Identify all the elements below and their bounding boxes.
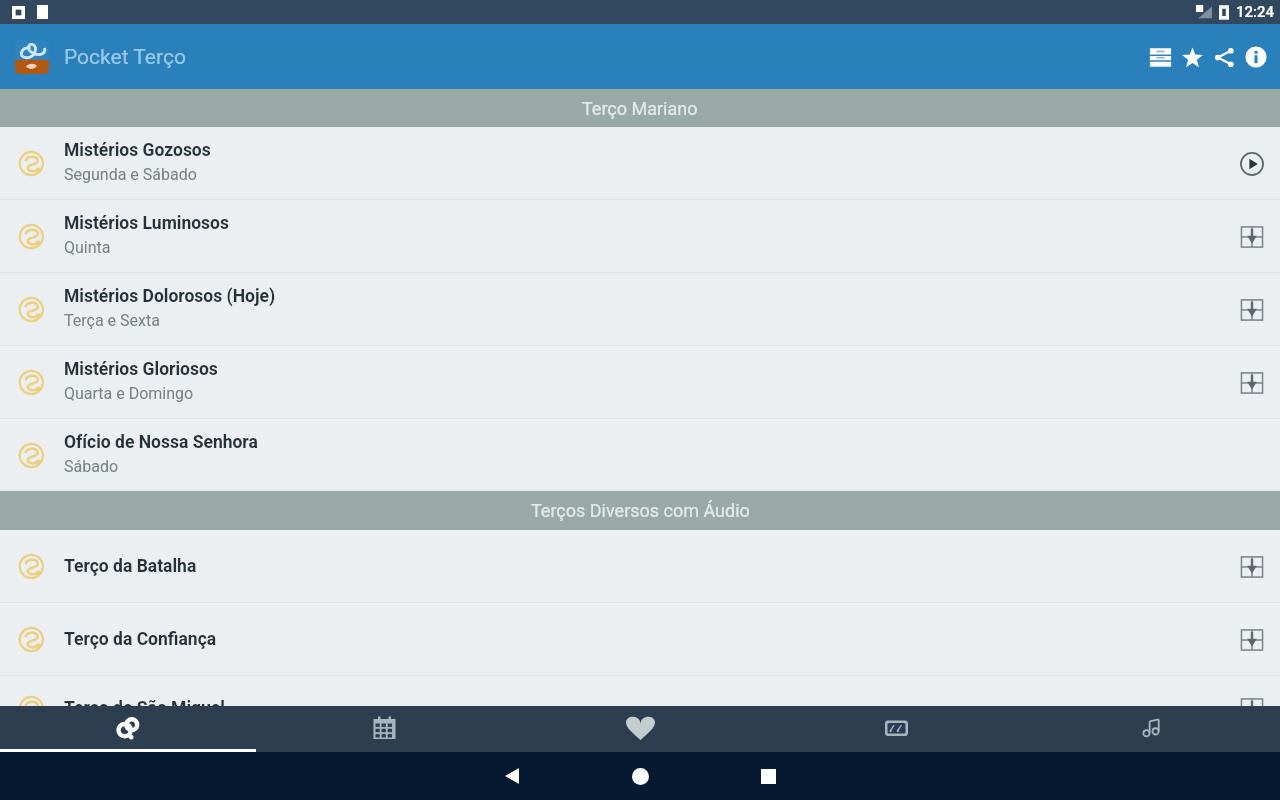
staticText: Terço Mariano — [582, 98, 698, 119]
button[interactable]: Terço de São Miguel — [0, 676, 1280, 706]
staticText: Sábado — [64, 457, 119, 476]
button[interactable]: Info — [1240, 33, 1272, 81]
staticText: Pocket Terço — [64, 45, 186, 70]
button[interactable]: Terço da Confiança — [0, 603, 1280, 676]
staticText: Quarta e Domingo — [64, 384, 194, 403]
button[interactable]: Terço da Batalha — [0, 530, 1280, 603]
button[interactable]: Favorites — [1176, 33, 1208, 81]
staticText: Ofício de Nossa Senhora — [64, 432, 258, 453]
button[interactable]: Recents — [744, 752, 792, 800]
staticText: Terço da Batalha — [64, 556, 197, 577]
button[interactable]: Rosary — [0, 706, 256, 752]
button[interactable]: Mistérios Dolorosos (Hoje) — [0, 273, 1280, 346]
button[interactable]: Music — [1024, 706, 1280, 752]
button[interactable]: Favorites — [512, 706, 768, 752]
staticText: Quinta — [64, 238, 111, 257]
button[interactable]: Prayer list — [1144, 33, 1176, 81]
staticText: Terça e Sexta — [64, 311, 160, 330]
button[interactable]: Mistérios Gloriosos — [0, 346, 1280, 419]
button[interactable]: Calendar — [256, 706, 512, 752]
staticText: Terço de São Miguel — [64, 698, 225, 706]
staticText: Mistérios Luminosos — [64, 213, 229, 234]
staticText: Terços Diversos com Áudio — [531, 500, 750, 521]
staticText: Mistérios Dolorosos (Hoje) — [64, 286, 276, 307]
staticText: Mistérios Gozosos — [64, 140, 211, 161]
staticText: Mistérios Gloriosos — [64, 359, 218, 380]
button[interactable]: Share — [1208, 33, 1240, 81]
button[interactable]: Mistérios Gozosos — [0, 127, 1280, 200]
button[interactable]: Back — [488, 752, 536, 800]
staticText: 12:24 — [1236, 3, 1275, 21]
button[interactable]: Home — [616, 752, 664, 800]
staticText: Terço da Confiança — [64, 629, 217, 650]
button[interactable]: Ofício de Nossa Senhora — [0, 419, 1280, 491]
button[interactable]: Prayers — [768, 706, 1024, 752]
button[interactable]: Mistérios Luminosos — [0, 200, 1280, 273]
staticText: Segunda e Sábado — [64, 165, 197, 184]
